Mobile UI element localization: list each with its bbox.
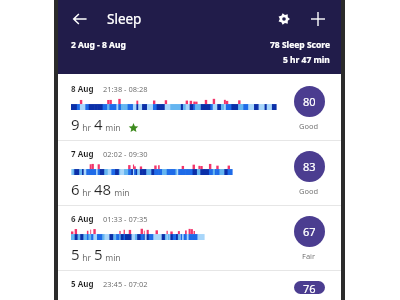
button[interactable]: 8 Aug	[58, 76, 341, 140]
staticText: hr	[80, 122, 94, 134]
staticText: 02:02 - 09:30	[103, 149, 148, 159]
staticText: Fair	[302, 251, 316, 261]
staticText: Sleep	[107, 10, 142, 28]
staticText: hr	[80, 252, 94, 264]
staticText: Good	[299, 186, 319, 196]
staticText: min	[112, 187, 130, 199]
staticText: min	[103, 252, 121, 264]
staticText: min	[103, 122, 121, 134]
staticText: Good	[299, 121, 319, 131]
staticText: 76	[303, 281, 316, 294]
staticText: 01:33 - 07:35	[103, 214, 148, 224]
staticText: 9	[71, 114, 80, 134]
staticText: 7 Aug	[71, 148, 94, 159]
button[interactable]: Add	[305, 6, 331, 32]
staticText: 80	[303, 94, 316, 109]
staticText: 48	[94, 179, 112, 199]
staticText: 78 Sleep Score	[270, 39, 330, 51]
button[interactable]: Back	[68, 7, 92, 31]
button[interactable]: 2 Aug - 8 Aug	[58, 37, 341, 74]
staticText: 5	[71, 244, 80, 264]
staticText: 4	[94, 114, 103, 134]
button[interactable]: Settings	[271, 6, 297, 32]
staticText: 2 Aug - 8 Aug	[71, 39, 126, 51]
staticText: 21:38 - 08:28	[103, 84, 148, 94]
staticText: 6	[71, 179, 80, 199]
button[interactable]: 5 Aug	[58, 271, 341, 300]
staticText: 8 Aug	[71, 83, 94, 94]
button[interactable]: 7 Aug	[58, 141, 341, 205]
staticText: 23:45 - 07:02	[103, 279, 148, 289]
staticText: 5 Aug	[71, 278, 94, 289]
staticText: hr	[80, 187, 94, 199]
staticText: 83	[303, 159, 316, 174]
staticText: 5 hr 47 min	[283, 54, 330, 66]
staticText: 6 Aug	[71, 213, 94, 224]
staticText: 5	[94, 244, 103, 264]
button[interactable]: 6 Aug	[58, 206, 341, 270]
staticText: 67	[303, 224, 316, 239]
